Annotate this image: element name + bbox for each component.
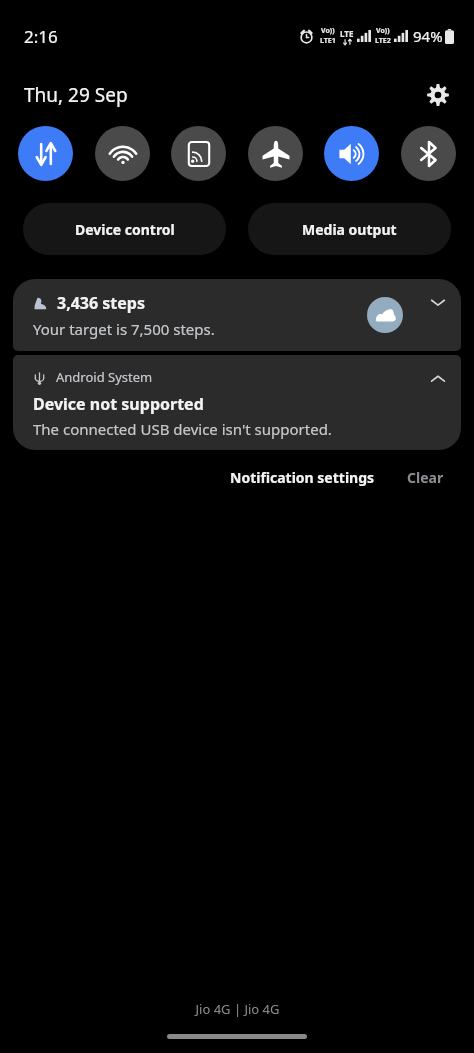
button[interactable]: Mobile data <box>18 126 73 181</box>
button[interactable]: 3,436 steps <box>13 279 461 351</box>
button[interactable]: Collapse <box>421 361 455 395</box>
button[interactable]: Clear <box>397 462 454 493</box>
staticText: LTE <box>340 28 354 39</box>
staticText: The connected USB device isn't supported… <box>33 419 332 439</box>
staticText: Device control <box>75 220 175 239</box>
staticText: Android System <box>56 368 153 386</box>
staticText: LTE2 <box>375 36 391 46</box>
button[interactable]: Bluetooth <box>401 126 456 181</box>
staticText: 2:16 <box>24 25 58 48</box>
staticText: Vo)) <box>376 26 390 36</box>
staticText: LTE1 <box>320 36 336 46</box>
button[interactable]: Airplane mode <box>248 126 303 181</box>
button[interactable]: Notification settings <box>220 462 385 493</box>
button[interactable]: Android System <box>13 355 461 450</box>
staticText: Clear <box>407 468 444 487</box>
staticText: Device not supported <box>33 393 204 415</box>
staticText: Notification settings <box>230 468 375 487</box>
button[interactable]: Device control <box>23 203 226 255</box>
staticText: 3,436 steps <box>57 292 146 314</box>
staticText: Vo)) <box>321 26 335 36</box>
staticText: Jio 4G | Jio 4G <box>195 1000 280 1018</box>
staticText: Media output <box>302 220 397 239</box>
staticText: Thu, 29 Sep <box>24 82 128 108</box>
button[interactable]: Expand <box>421 285 455 319</box>
button[interactable]: Settings <box>418 75 458 115</box>
button[interactable]: Sound <box>324 126 379 181</box>
button[interactable]: Media output <box>248 203 451 255</box>
staticText: 94% <box>413 26 443 46</box>
button[interactable]: Smart View <box>171 126 226 181</box>
staticText: Your target is 7,500 steps. <box>33 319 215 339</box>
button[interactable]: Wi-Fi <box>95 126 150 181</box>
